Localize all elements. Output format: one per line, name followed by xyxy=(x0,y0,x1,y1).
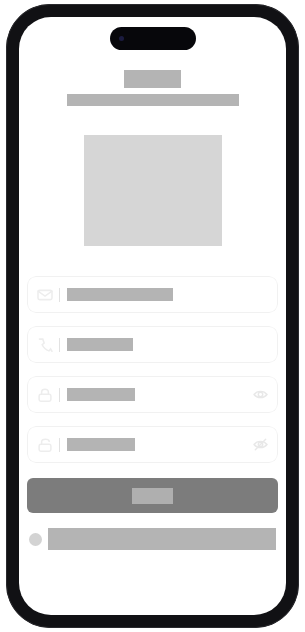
button[interactable]: Phone xyxy=(27,326,278,363)
other: Show password xyxy=(254,388,267,401)
other: Confirm password xyxy=(38,438,52,452)
other: Phone xyxy=(38,338,52,352)
other: Email xyxy=(38,288,52,302)
button[interactable]: Confirm password xyxy=(27,426,278,463)
other: Password xyxy=(38,388,52,402)
button[interactable] xyxy=(27,478,278,513)
button[interactable]: Email xyxy=(27,276,278,313)
button[interactable]: Password xyxy=(27,376,278,413)
other: Hide password xyxy=(254,438,267,451)
button[interactable] xyxy=(29,528,276,550)
